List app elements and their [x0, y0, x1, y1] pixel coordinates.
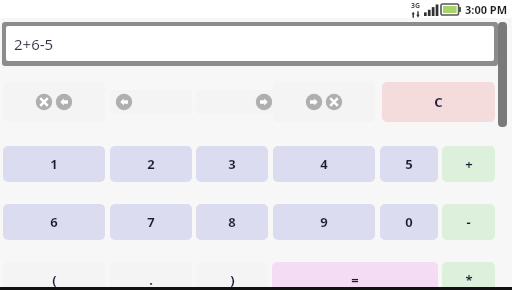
button[interactable]: Move cursor left	[110, 90, 192, 114]
button[interactable]: 5	[380, 146, 438, 182]
button[interactable]: (	[3, 262, 105, 290]
button[interactable]: *	[442, 262, 495, 290]
button[interactable]: Move cursor right	[196, 90, 278, 114]
button[interactable]: =	[272, 262, 438, 290]
button[interactable]: Clear all	[3, 82, 105, 122]
button[interactable]: 8	[196, 204, 268, 240]
button[interactable]: 1	[3, 146, 105, 182]
button[interactable]: 6	[3, 204, 105, 240]
button[interactable]: )	[196, 262, 268, 290]
staticText: C	[434, 93, 443, 111]
button[interactable]: 0	[380, 204, 438, 240]
button[interactable]: 4	[273, 146, 375, 182]
staticText: 2	[147, 155, 155, 173]
staticText: (	[52, 271, 57, 289]
staticText: 4	[320, 155, 328, 173]
staticText: 2+6-5	[14, 34, 54, 54]
staticText: 5	[405, 155, 413, 173]
staticText: 1	[50, 155, 58, 173]
button[interactable]: .	[110, 262, 192, 290]
button[interactable]: 3	[196, 146, 268, 182]
staticText: 0	[405, 213, 413, 231]
staticText: 8	[228, 213, 236, 231]
button[interactable]: 2+6-5	[2, 22, 498, 66]
button[interactable]: Delete forward	[273, 82, 375, 122]
button[interactable]: 9	[273, 204, 375, 240]
button[interactable]: 2	[110, 146, 192, 182]
staticText: =	[351, 271, 359, 289]
button[interactable]: -	[442, 204, 495, 240]
staticText: +	[465, 155, 473, 173]
staticText: -	[466, 213, 471, 231]
staticText: 9	[320, 213, 328, 231]
staticText: 6	[50, 213, 58, 231]
staticText: *	[465, 271, 473, 289]
staticText: )	[230, 271, 235, 289]
staticText: 7	[147, 213, 155, 231]
button[interactable]: +	[442, 146, 495, 182]
staticText: 3G	[411, 1, 421, 11]
staticText: 3	[228, 155, 236, 173]
button[interactable]: 7	[110, 204, 192, 240]
staticText: 3:00 PM	[465, 2, 508, 17]
staticText: .	[149, 271, 153, 289]
button[interactable]: C	[382, 82, 495, 122]
